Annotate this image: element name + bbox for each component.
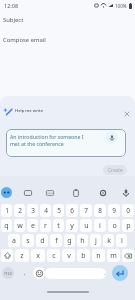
staticText: Help me write: [15, 108, 44, 114]
staticText: 2: [18, 206, 22, 215]
staticText: w: [17, 221, 23, 231]
staticText: r: [44, 221, 47, 231]
staticText: b: [81, 251, 86, 261]
staticText: m: [110, 251, 117, 261]
button[interactable]: Period: [100, 263, 109, 283]
staticText: An introduction for someone I met at the…: [10, 133, 84, 147]
staticText: 4: [44, 206, 48, 215]
staticText: 12:08: [4, 2, 19, 9]
button[interactable]: q: [1, 219, 12, 232]
button[interactable]: 8: [94, 204, 106, 217]
staticText: c: [52, 251, 56, 261]
button[interactable]: t: [53, 219, 64, 232]
button[interactable]: 7: [80, 204, 92, 217]
button[interactable]: d: [36, 234, 48, 247]
staticText: d: [40, 236, 45, 246]
staticText: i: [99, 221, 101, 231]
button[interactable]: x: [31, 249, 45, 262]
button[interactable]: Gif: [21, 186, 34, 199]
staticText: Compose email: [3, 36, 46, 44]
button[interactable]: Enter: [112, 265, 128, 281]
button[interactable]: l: [116, 234, 127, 247]
button[interactable]: i: [94, 219, 106, 232]
button[interactable]: Backspace: [122, 249, 134, 262]
button[interactable]: Space: [45, 268, 106, 279]
staticText: h: [80, 236, 85, 246]
staticText: 0: [126, 206, 130, 215]
staticText: t: [57, 221, 60, 231]
button[interactable]: 4: [40, 204, 51, 217]
button[interactable]: r: [40, 219, 51, 232]
staticText: 3: [31, 206, 35, 215]
staticText: 1: [5, 206, 9, 215]
button[interactable]: 9: [108, 204, 120, 217]
button[interactable]: g: [64, 234, 75, 247]
button[interactable]: o: [108, 219, 120, 232]
button[interactable]: 3: [27, 204, 38, 217]
staticText: n: [96, 251, 101, 261]
staticText: j: [95, 236, 97, 246]
staticText: v: [67, 251, 71, 261]
staticText: ?123: [4, 271, 12, 276]
staticText: a: [12, 236, 16, 246]
button[interactable]: h: [77, 234, 88, 247]
staticText: z: [20, 251, 24, 261]
button[interactable]: Comma: [19, 263, 31, 283]
staticText: k: [107, 236, 111, 246]
staticText: p: [126, 221, 131, 231]
staticText: Subject: [3, 16, 24, 24]
button[interactable]: 2: [14, 204, 25, 217]
button[interactable]: Settings: [96, 186, 109, 199]
button[interactable]: 1: [1, 204, 12, 217]
button[interactable]: e: [27, 219, 38, 232]
button[interactable]: k: [103, 234, 114, 247]
staticText: f: [55, 236, 58, 246]
button[interactable]: m: [107, 249, 120, 262]
staticText: o: [112, 221, 117, 231]
button[interactable]: An introduction for someone I met at the…: [6, 129, 126, 157]
button[interactable]: 6: [66, 204, 78, 217]
button[interactable]: Create: [103, 165, 127, 175]
staticText: u: [84, 221, 89, 231]
button[interactable]: 5: [53, 204, 64, 217]
button[interactable]: b: [77, 249, 90, 262]
button[interactable]: a: [8, 234, 20, 247]
button[interactable]: z: [15, 249, 29, 262]
staticText: y: [70, 221, 74, 231]
staticText: x: [36, 251, 40, 261]
button[interactable]: Symbols: [2, 267, 14, 279]
staticText: ,: [24, 269, 26, 277]
staticText: e: [31, 221, 35, 231]
button[interactable]: s: [22, 234, 34, 247]
button[interactable]: Assistant: [0, 186, 13, 199]
staticText: 100%: [115, 3, 127, 9]
staticText: g: [67, 236, 72, 246]
button[interactable]: Clipboard: [69, 186, 82, 199]
button[interactable]: Voice typing: [119, 186, 132, 199]
staticText: 8: [98, 206, 102, 215]
button[interactable]: f: [50, 234, 62, 247]
button[interactable]: j: [90, 234, 101, 247]
staticText: 6: [70, 206, 74, 215]
button[interactable]: u: [80, 219, 92, 232]
staticText: Create: [108, 167, 123, 174]
button[interactable]: v: [62, 249, 75, 262]
button[interactable]: 0: [122, 204, 134, 217]
button[interactable]: Emoji: [33, 267, 45, 279]
staticText: l: [121, 236, 123, 246]
button[interactable]: c: [47, 249, 60, 262]
button[interactable]: Shift: [1, 249, 13, 262]
button[interactable]: n: [92, 249, 105, 262]
staticText: 5: [57, 206, 61, 215]
staticText: 7: [84, 206, 88, 215]
button[interactable]: p: [122, 219, 134, 232]
staticText: q: [4, 221, 9, 231]
button[interactable]: y: [66, 219, 78, 232]
button[interactable]: w: [14, 219, 25, 232]
staticText: 9: [112, 206, 116, 215]
staticText: s: [26, 236, 30, 246]
button[interactable]: Stickers: [43, 186, 56, 199]
button[interactable]: Close: [121, 108, 132, 119]
staticText: .: [104, 269, 106, 277]
button[interactable]: Voice input: [105, 131, 118, 144]
